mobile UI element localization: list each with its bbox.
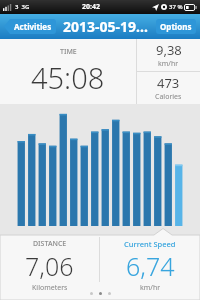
staticText: Activities: [14, 21, 52, 32]
staticText: 9,38: [156, 41, 182, 59]
staticText: km/hr: [158, 59, 179, 69]
staticText: 6,74: [126, 249, 175, 283]
staticText: Kilometers: [32, 283, 68, 293]
staticText: Current Speed: [124, 239, 176, 249]
staticText: 20:42: [82, 2, 100, 12]
button[interactable]: DISTANCE: [0, 237, 99, 300]
button[interactable]: Activities: [4, 19, 56, 34]
button[interactable]: TIME: [0, 39, 136, 104]
staticText: 37 %: [169, 3, 183, 11]
button[interactable]: 473: [137, 72, 200, 104]
staticText: TIME: [60, 47, 77, 57]
button[interactable]: Options: [156, 19, 196, 34]
staticText: Calories: [155, 92, 182, 102]
button[interactable]: Current Speed: [100, 237, 200, 300]
staticText: Options: [160, 21, 192, 32]
staticText: 2013-05-19…: [63, 17, 148, 36]
button[interactable]: 9,38: [137, 39, 200, 71]
staticText: 7,06: [25, 249, 74, 283]
staticText: 45:08: [31, 58, 105, 97]
staticText: DISTANCE: [33, 239, 67, 249]
staticText: 473: [157, 74, 180, 92]
staticText: 3 3G: [15, 3, 30, 11]
staticText: km/hr: [140, 283, 161, 293]
other: Speed chart: [0, 104, 200, 228]
